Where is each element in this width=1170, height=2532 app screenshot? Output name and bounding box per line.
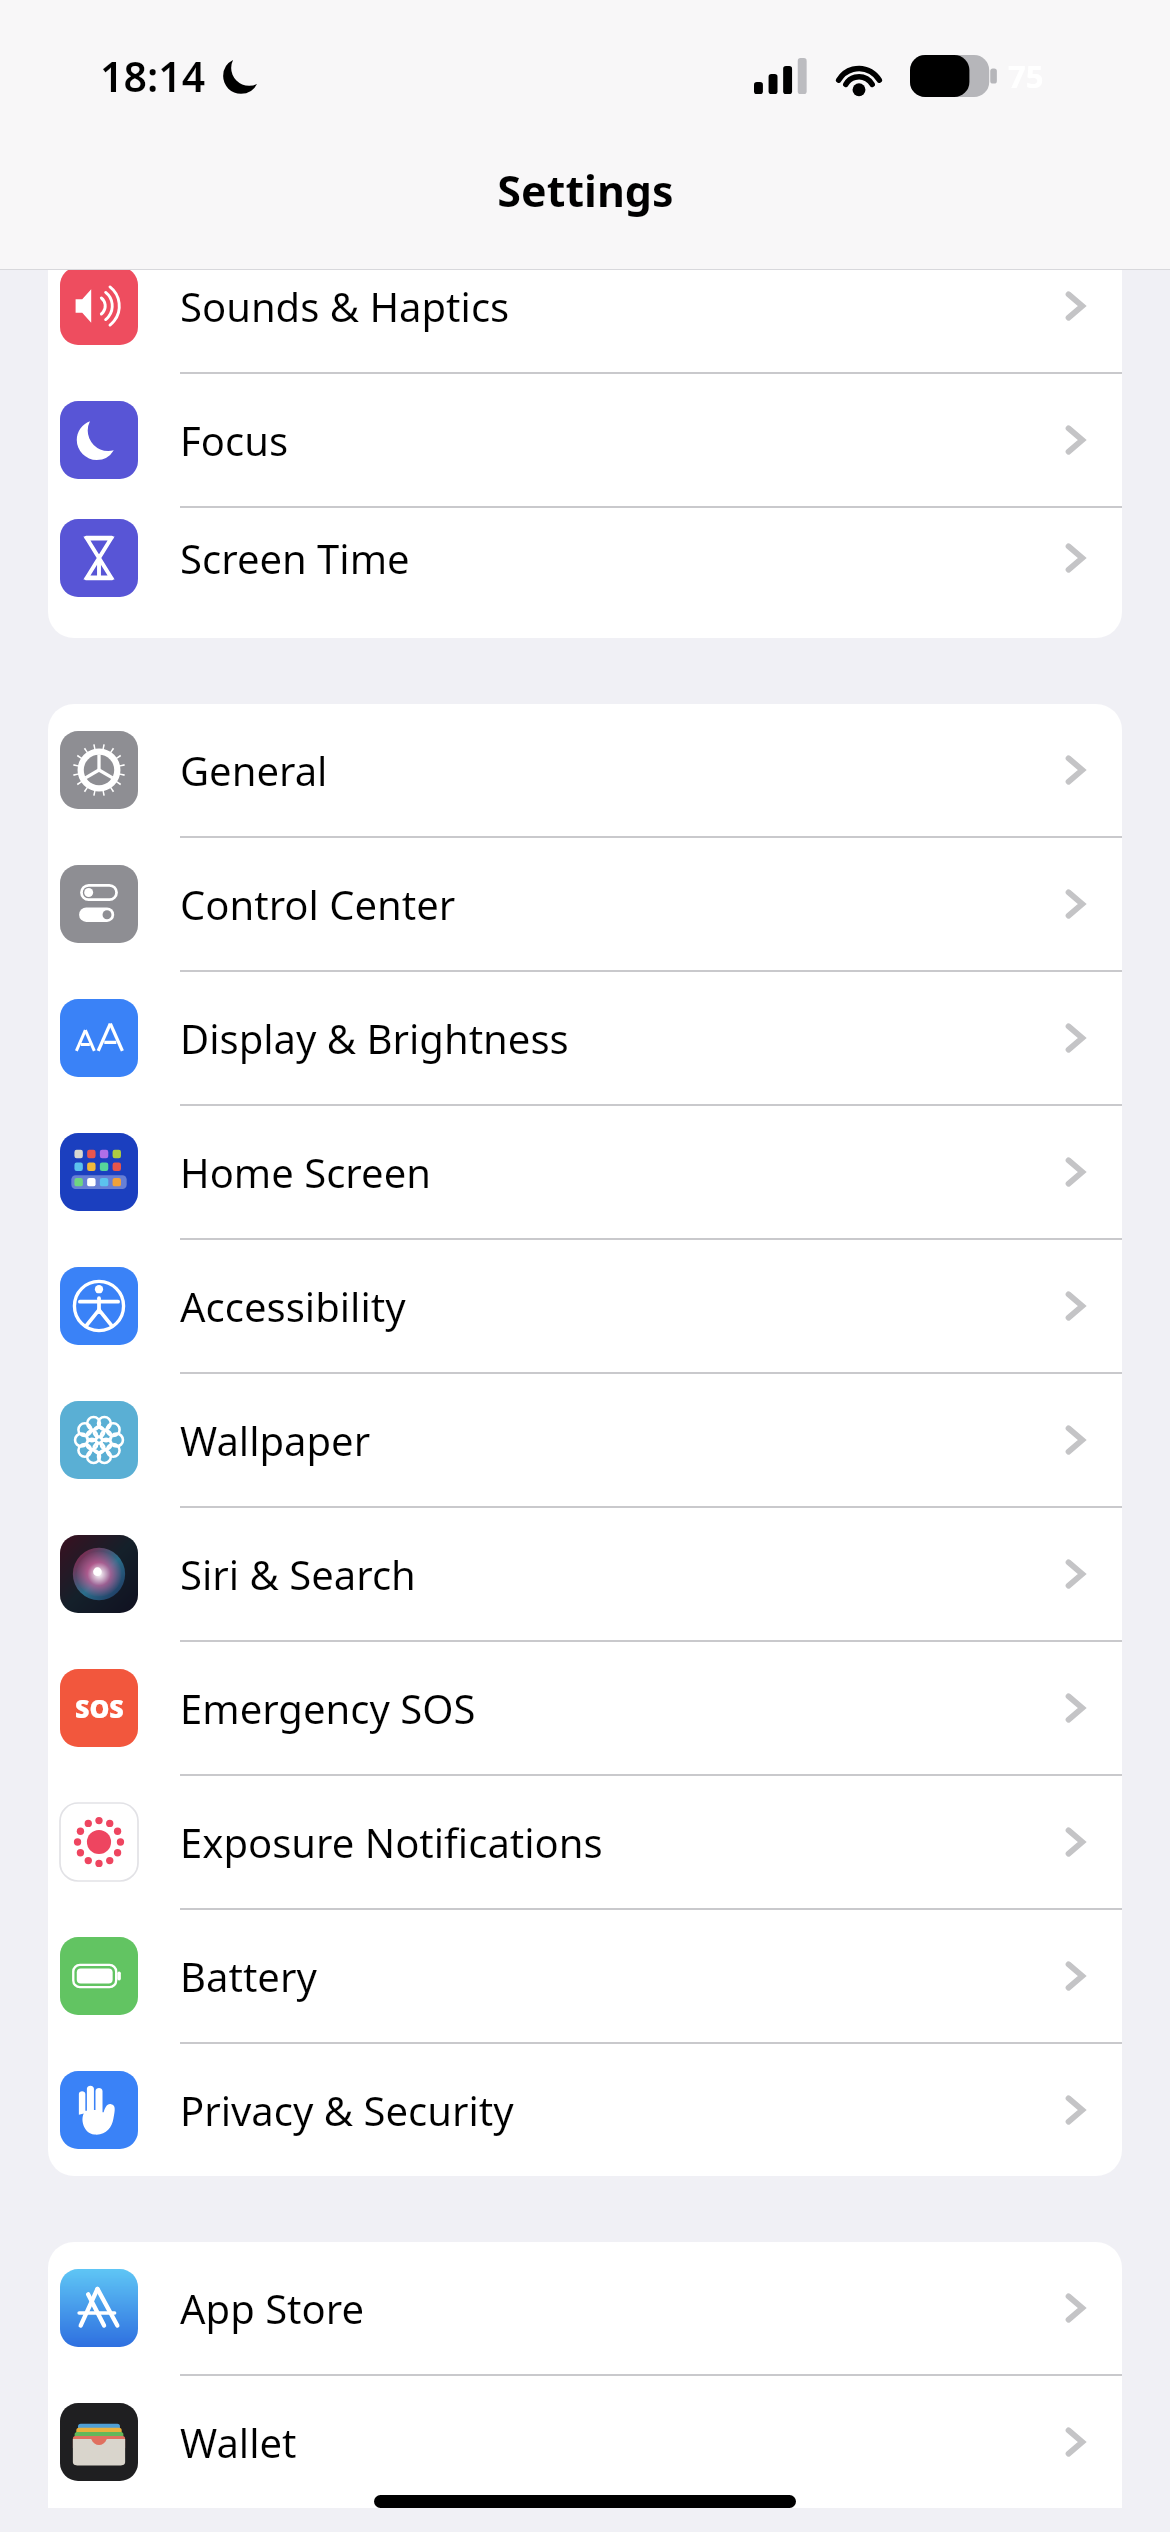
staticText: Focus [180,413,1062,467]
staticText: Display & Brightness [180,1011,1062,1065]
staticText: Sounds & Haptics [180,279,1062,333]
staticText: Screen Time [180,531,1062,585]
staticText: App Store [180,2281,1062,2335]
staticText: Wallet [180,2415,1062,2469]
button[interactable]: Exposure Notifications [48,1776,1122,1910]
staticText: General [180,743,1062,797]
staticText: Settings [497,161,674,220]
button[interactable]: Wallet [48,2376,1122,2508]
staticText: Accessibility [180,1279,1062,1333]
staticText: SOS [75,1691,124,1725]
staticText: Wallpaper [180,1413,1062,1467]
button[interactable]: General [48,704,1122,838]
staticText: Privacy & Security [180,2083,1062,2137]
button[interactable]: Battery [48,1910,1122,2044]
staticText: Home Screen [180,1145,1062,1199]
staticText: Siri & Search [180,1547,1062,1601]
staticText: Exposure Notifications [180,1815,1062,1869]
button[interactable]: Home Screen [48,1106,1122,1240]
staticText: 75 [1008,55,1044,97]
button[interactable]: Privacy & Security [48,2044,1122,2176]
button[interactable]: Wallpaper [48,1374,1122,1508]
button[interactable]: App Store [48,2242,1122,2376]
button[interactable]: Siri & Search [48,1508,1122,1642]
staticText: Emergency SOS [180,1681,1062,1735]
staticText: 18:14 [100,48,206,104]
staticText: Control Center [180,877,1062,931]
button[interactable]: SOS [48,1642,1122,1776]
staticText: Battery [180,1949,1062,2003]
button[interactable]: Accessibility [48,1240,1122,1374]
button[interactable]: Sounds & Haptics [48,270,1122,374]
button[interactable]: Display & Brightness [48,972,1122,1106]
button[interactable]: Control Center [48,838,1122,972]
button[interactable]: Focus [48,374,1122,508]
button[interactable]: Screen Time [48,508,1122,608]
